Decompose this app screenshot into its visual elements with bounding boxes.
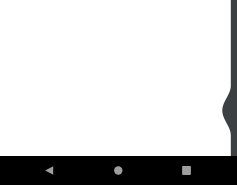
button[interactable]: Recent apps xyxy=(164,156,210,185)
button[interactable]: Back xyxy=(26,156,72,185)
button[interactable]: Home xyxy=(95,156,141,185)
